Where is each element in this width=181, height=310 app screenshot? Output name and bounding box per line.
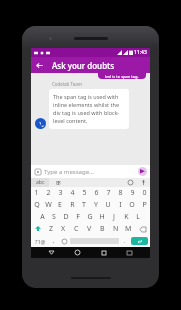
button[interactable]: The span tag is used with inline element… — [49, 89, 129, 129]
staticText: 9 — [130, 188, 135, 198]
button[interactable]: L — [132, 211, 144, 223]
button[interactable]: Emoji — [59, 236, 70, 246]
staticText: K — [124, 212, 129, 222]
button[interactable]: D — [60, 211, 72, 223]
button[interactable]: Backspace — [135, 223, 150, 235]
button[interactable]: K — [120, 211, 132, 223]
button[interactable]: abc — [31, 178, 49, 187]
button[interactable]: 2 — [42, 187, 54, 199]
staticText: H — [99, 212, 105, 222]
button[interactable]: S — [48, 211, 60, 223]
staticText: M — [125, 224, 132, 234]
staticText: , — [53, 237, 55, 245]
staticText: 6 — [94, 188, 99, 198]
button[interactable]: Back — [46, 247, 57, 258]
button[interactable]: M — [122, 223, 135, 235]
staticText: C — [74, 224, 79, 234]
button[interactable]: Shift — [31, 223, 45, 235]
button[interactable]: क — [49, 178, 67, 187]
staticText: 0 — [142, 188, 147, 198]
staticText: I — [119, 200, 122, 210]
button[interactable]: Voice input — [139, 178, 148, 187]
staticText: Codelab Team — [52, 81, 82, 87]
staticText: Q — [34, 200, 40, 210]
staticText: E — [58, 200, 62, 210]
staticText: F — [76, 212, 80, 222]
staticText: O — [129, 200, 135, 210]
button[interactable]: Attach photo — [34, 168, 41, 175]
staticText: 11:43 — [134, 49, 147, 56]
button[interactable]: Recent apps — [98, 247, 109, 258]
button[interactable]: E — [54, 199, 66, 211]
staticText: B — [100, 224, 105, 234]
staticText: N — [113, 224, 119, 234]
staticText: 7 — [106, 188, 111, 198]
button[interactable]: Back — [31, 57, 47, 73]
staticText: U — [105, 200, 111, 210]
button[interactable]: C — [70, 223, 83, 235]
button[interactable]: 0 — [138, 187, 150, 199]
button[interactable]: Q — [31, 199, 42, 211]
button[interactable]: 5 — [78, 187, 90, 199]
button[interactable]: 1 — [31, 187, 42, 199]
button[interactable]: N — [109, 223, 122, 235]
button[interactable]: V — [83, 223, 96, 235]
button[interactable]: Send — [138, 167, 147, 176]
staticText: 5 — [82, 188, 87, 198]
staticText: 4 — [70, 188, 75, 198]
staticText: S — [52, 212, 56, 222]
button[interactable]: ?1@ — [32, 236, 49, 246]
staticText: 8 — [118, 188, 123, 198]
staticText: Z — [49, 224, 54, 234]
staticText: P — [142, 200, 147, 210]
button[interactable]: U — [102, 199, 114, 211]
staticText: A — [40, 212, 45, 222]
button[interactable]: 3 — [54, 187, 66, 199]
staticText: Type a message... — [44, 168, 138, 176]
staticText: V — [87, 224, 92, 234]
staticText: J — [113, 212, 115, 222]
staticText: D — [63, 212, 69, 222]
button[interactable]: Y — [90, 199, 102, 211]
button[interactable]: B — [96, 223, 109, 235]
button[interactable]: P — [138, 199, 150, 211]
button[interactable]: F — [72, 211, 84, 223]
button[interactable]: Settings — [126, 178, 135, 187]
staticText: Ask your doubts — [52, 60, 115, 71]
staticText: tml is to span tag. — [105, 74, 139, 79]
button[interactable]: I — [114, 199, 126, 211]
staticText: 1 — [34, 188, 39, 198]
button[interactable]: 6 — [90, 187, 102, 199]
button[interactable]: G — [84, 211, 96, 223]
button[interactable]: , — [49, 236, 59, 246]
button[interactable]: 7 — [102, 187, 114, 199]
button[interactable]: Hide keyboard — [124, 247, 135, 258]
button[interactable]: Home — [72, 247, 83, 258]
button[interactable]: T — [78, 199, 90, 211]
staticText: क — [56, 179, 61, 187]
button[interactable]: 8 — [114, 187, 126, 199]
button[interactable]: J — [108, 211, 120, 223]
button[interactable]: X — [57, 223, 70, 235]
button[interactable]: tml is to span tag. — [98, 73, 146, 79]
staticText: L — [136, 212, 140, 222]
staticText: G — [87, 212, 93, 222]
button[interactable]: Z — [45, 223, 57, 235]
staticText: Y — [94, 200, 98, 210]
button[interactable]: R — [66, 199, 78, 211]
staticText: ?1@ — [35, 238, 46, 245]
button[interactable]: O — [126, 199, 138, 211]
staticText: abc — [36, 179, 45, 186]
staticText: . — [124, 237, 126, 245]
staticText: 2 — [46, 188, 51, 198]
button[interactable]: 4 — [66, 187, 78, 199]
button[interactable]: A — [37, 211, 48, 223]
button[interactable]: 9 — [126, 187, 138, 199]
staticText: X — [61, 224, 66, 234]
button[interactable]: Enter — [131, 237, 148, 245]
button[interactable]: W — [42, 199, 54, 211]
button[interactable]: H — [96, 211, 108, 223]
staticText: R — [70, 200, 75, 210]
button[interactable]: . — [119, 236, 130, 246]
